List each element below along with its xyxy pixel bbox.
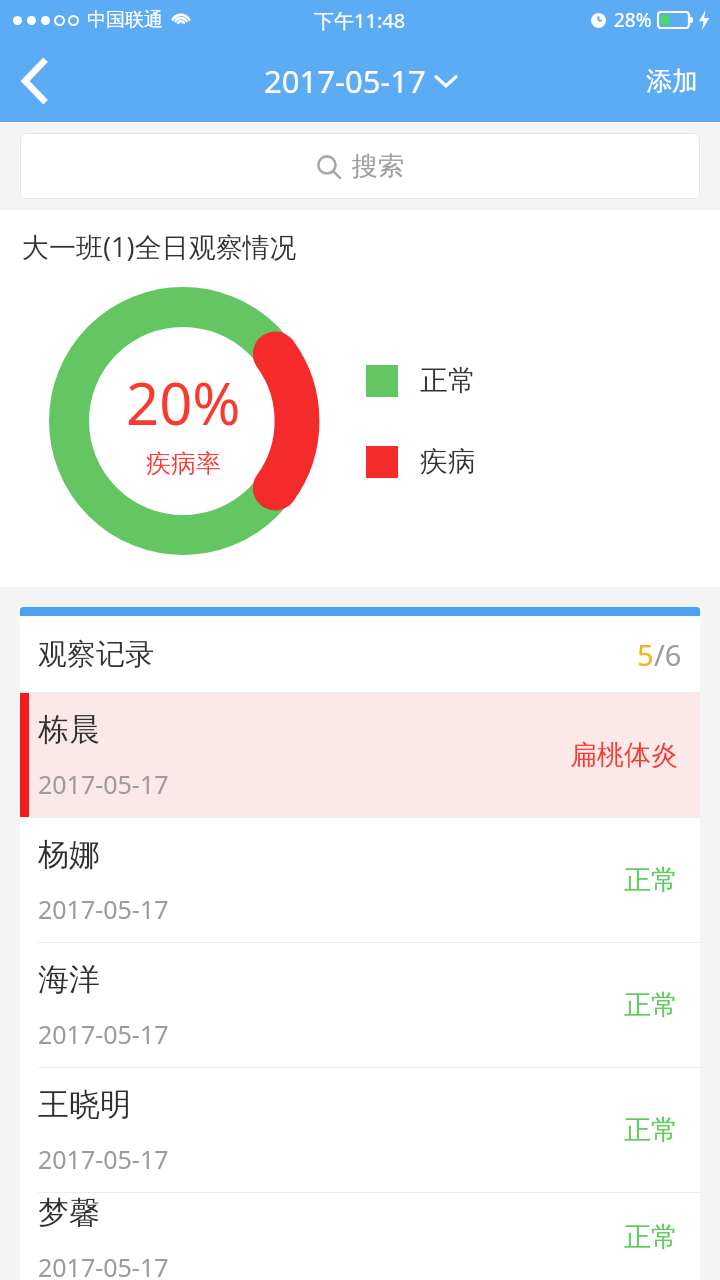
staticText: 5 <box>637 635 654 674</box>
staticText: 2017-05-17 <box>38 767 169 801</box>
staticText: 正常 <box>624 1113 678 1147</box>
button[interactable]: 王晓明 <box>20 1068 700 1192</box>
staticText: 栋晨 <box>38 710 100 749</box>
staticText: 20% <box>126 363 241 442</box>
button[interactable]: 观察记录 <box>20 616 700 692</box>
staticText: 添加 <box>646 65 698 98</box>
staticText: 观察记录 <box>38 636 154 673</box>
staticText: 搜索 <box>352 150 404 183</box>
staticText: 杨娜 <box>38 835 100 874</box>
staticText: 下午11:48 <box>314 7 406 34</box>
button[interactable]: 搜索 <box>20 133 700 199</box>
staticText: 正常 <box>624 988 678 1022</box>
button[interactable]: 杨娜 <box>20 818 700 942</box>
staticText: 28% <box>614 7 652 33</box>
button[interactable]: 2017-05-17 <box>264 60 456 102</box>
staticText: 2017-05-17 <box>264 60 426 102</box>
staticText: 梦馨 <box>38 1193 100 1232</box>
staticText: 疾病 <box>420 444 476 479</box>
staticText: 大一班(1)全日观察情况 <box>22 228 297 265</box>
staticText: 2017-05-17 <box>38 1017 169 1051</box>
staticText: 2017-05-17 <box>38 1250 169 1280</box>
button[interactable]: 添加 <box>624 51 720 112</box>
staticText: 正常 <box>420 363 476 398</box>
button[interactable]: 梦馨 <box>20 1193 700 1280</box>
staticText: 正常 <box>624 1220 678 1254</box>
staticText: 正常 <box>624 863 678 897</box>
staticText: 海洋 <box>38 960 100 999</box>
staticText: 扁桃体炎 <box>570 738 678 772</box>
staticText: 2017-05-17 <box>38 892 169 926</box>
staticText: 疾病率 <box>146 448 221 479</box>
button[interactable]: 海洋 <box>20 943 700 1067</box>
staticText: 中国联通 <box>87 8 163 32</box>
staticText: /6 <box>654 635 682 674</box>
staticText: 王晓明 <box>38 1085 131 1124</box>
button[interactable]: Back <box>0 46 70 116</box>
button[interactable]: 栋晨 <box>20 693 700 817</box>
staticText: 2017-05-17 <box>38 1142 169 1176</box>
